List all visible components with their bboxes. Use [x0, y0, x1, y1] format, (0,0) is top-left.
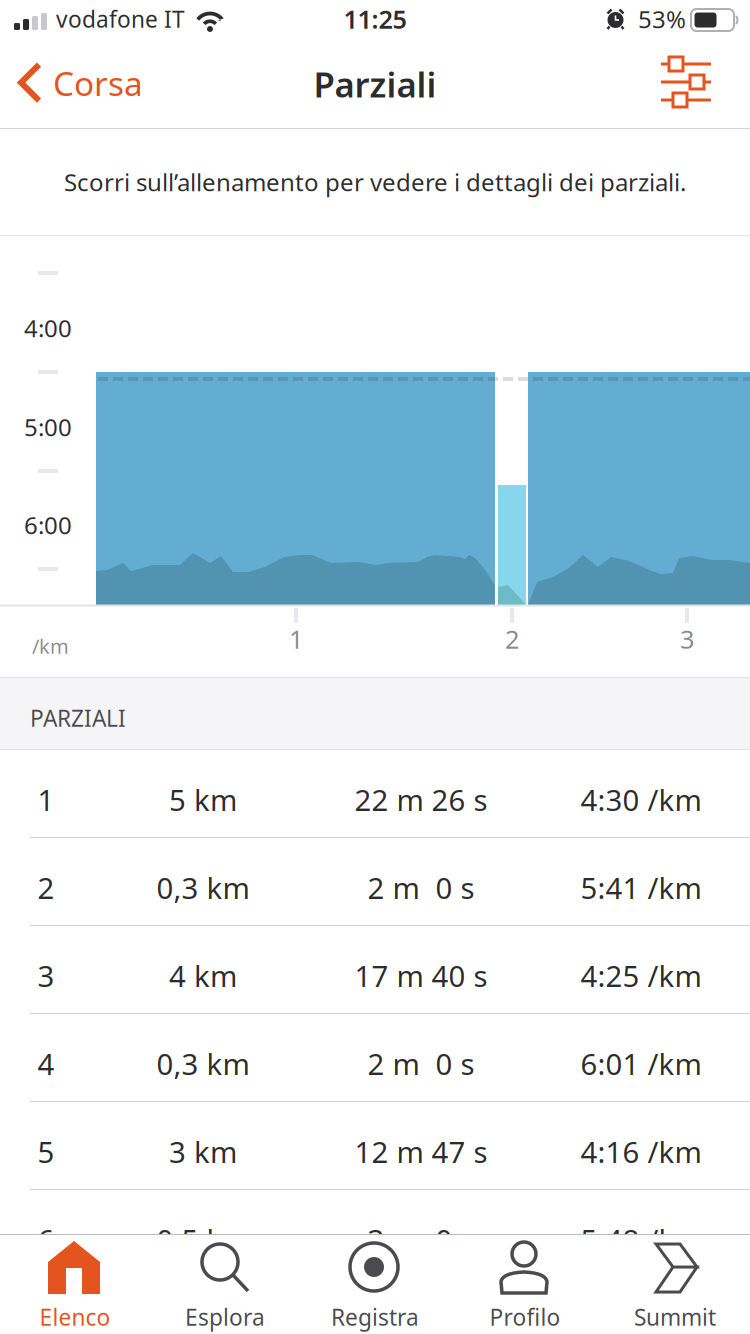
staticText: Profilo	[489, 1302, 560, 1332]
staticText: 2	[505, 622, 519, 656]
staticText: /km	[32, 633, 69, 659]
button[interactable]: Registra	[300, 1235, 450, 1334]
button[interactable]: Elenco	[0, 1235, 150, 1334]
staticText: 4:00	[24, 312, 72, 344]
staticText: Parziali	[313, 61, 436, 107]
button[interactable]: Esplora	[150, 1235, 300, 1334]
staticText: 3 km	[169, 1132, 237, 1171]
button[interactable]: Summit	[600, 1235, 750, 1334]
button[interactable]: 6	[0, 1190, 750, 1277]
staticText: 22 m 26 s	[354, 780, 487, 819]
button[interactable]: Profilo	[450, 1235, 600, 1334]
staticText: 17 m 40 s	[354, 956, 487, 995]
staticText: 5	[37, 1132, 54, 1171]
button[interactable]: 4	[0, 1014, 750, 1101]
staticText: 0,3 km	[156, 868, 249, 907]
staticText: 4:30 /km	[580, 780, 701, 819]
staticText: Scorri sull’allenamento per vedere i det…	[64, 166, 686, 198]
staticText: Corsa	[53, 61, 143, 105]
staticText: 5:00	[24, 411, 72, 443]
staticText: 1	[37, 780, 54, 819]
staticText: 6:00	[24, 509, 72, 541]
staticText: 6:01 /km	[580, 1044, 701, 1083]
staticText: 4 km	[169, 956, 237, 995]
staticText: 2 m 0 s	[367, 868, 474, 907]
staticText: 3 m 0 s	[367, 1220, 474, 1259]
button[interactable]: 1	[0, 750, 750, 837]
staticText: 53%	[638, 3, 686, 35]
staticText: 5 km	[169, 780, 237, 819]
button[interactable]: Corsa	[0, 44, 155, 131]
staticText: vodafone IT	[56, 4, 185, 34]
staticText: Esplora	[185, 1302, 265, 1332]
staticText: 0,5 km	[156, 1220, 249, 1259]
button[interactable]: 5	[0, 1102, 750, 1189]
staticText: 0,3 km	[156, 1044, 249, 1083]
staticText: 1	[289, 622, 303, 656]
staticText: 3	[37, 956, 54, 995]
button[interactable]: Filtri	[647, 44, 750, 128]
staticText: 5:48 /km	[580, 1220, 701, 1259]
staticText: 6	[37, 1220, 54, 1259]
staticText: 4	[37, 1044, 54, 1083]
staticText: PARZIALI	[30, 703, 126, 733]
staticText: 5:41 /km	[580, 868, 701, 907]
staticText: Registra	[331, 1302, 419, 1332]
staticText: 3	[680, 622, 694, 656]
button[interactable]: 2	[0, 838, 750, 925]
staticText: Elenco	[39, 1302, 110, 1332]
staticText: 4:25 /km	[580, 956, 701, 995]
staticText: Summit	[634, 1302, 716, 1332]
staticText: 12 m 47 s	[354, 1132, 487, 1171]
staticText: 2 m 0 s	[367, 1044, 474, 1083]
button[interactable]: 3	[0, 926, 750, 1013]
staticText: 2	[37, 868, 54, 907]
staticText: 11:25	[343, 2, 406, 36]
staticText: 4:16 /km	[580, 1132, 701, 1171]
